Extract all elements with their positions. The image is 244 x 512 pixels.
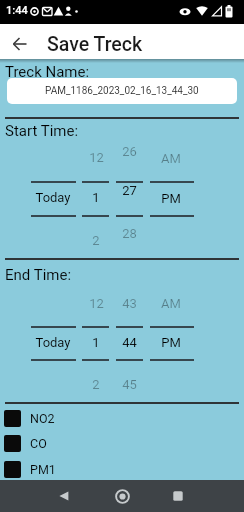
- staticText: PAM_1186_2023_02_16_13_44_30: [45, 85, 199, 97]
- button[interactable]: [49, 481, 78, 511]
- staticText: AM: [161, 151, 181, 166]
- staticText: 2: [92, 377, 100, 392]
- staticText: 1:44: [6, 4, 28, 17]
- staticText: NO2: [30, 411, 55, 426]
- button[interactable]: [163, 481, 192, 511]
- staticText: Treck Name:: [5, 63, 90, 81]
- button[interactable]: [6, 30, 34, 58]
- staticText: 43: [122, 296, 137, 311]
- staticText: 1: [92, 190, 100, 205]
- staticText: 28: [122, 226, 137, 241]
- staticText: Today: [35, 190, 71, 205]
- button[interactable]: PM1: [0, 457, 120, 482]
- button[interactable]: CO: [0, 431, 120, 456]
- staticText: Today: [35, 335, 71, 350]
- staticText: PM: [161, 335, 181, 350]
- button[interactable]: [107, 481, 137, 511]
- button[interactable]: NO2: [0, 406, 120, 431]
- staticText: 2: [92, 233, 100, 248]
- staticText: Start Time:: [5, 122, 79, 140]
- button[interactable]: PAM_1186_2023_02_16_13_44_30: [7, 78, 237, 104]
- staticText: PM1: [30, 462, 56, 477]
- staticText: 45: [122, 377, 137, 392]
- staticText: AM: [161, 296, 181, 311]
- staticText: CO: [30, 436, 47, 451]
- staticText: 12: [89, 296, 104, 311]
- staticText: 26: [122, 144, 137, 159]
- staticText: 1: [92, 335, 100, 350]
- staticText: 44: [122, 335, 137, 350]
- staticText: PM: [161, 191, 181, 206]
- staticText: Save Treck: [47, 33, 143, 56]
- staticText: End Time:: [5, 266, 72, 284]
- staticText: 12: [89, 150, 104, 165]
- staticText: 27: [122, 183, 137, 198]
